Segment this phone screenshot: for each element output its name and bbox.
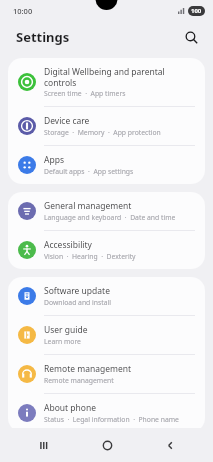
button[interactable]: General management <box>8 192 205 230</box>
button[interactable]: Software update <box>8 277 205 315</box>
button[interactable]: Search <box>179 25 203 49</box>
button[interactable]: User guide <box>8 316 205 354</box>
staticText: Remote management <box>44 363 132 375</box>
staticText: Accessibility <box>44 239 92 251</box>
button[interactable]: About phone <box>8 394 205 432</box>
button[interactable]: Apps <box>8 146 205 184</box>
staticText: Screen time · App timers <box>44 89 126 98</box>
staticText: About phone <box>44 402 97 414</box>
staticText: Digital Wellbeing and parental controls <box>44 66 165 88</box>
button[interactable]: Remote management <box>8 355 205 393</box>
staticText: Default apps · App settings <box>44 167 134 176</box>
staticText: Storage · Memory · App protection <box>44 128 161 137</box>
button[interactable]: Device care <box>8 107 205 145</box>
button[interactable]: Accessibility <box>8 231 205 269</box>
staticText: Software update <box>44 285 110 297</box>
staticText: Vision · Hearing · Dexterity <box>44 252 136 261</box>
staticText: 100 <box>191 7 202 15</box>
button[interactable]: Digital Wellbeing and parental controls <box>8 58 205 106</box>
staticText: Device care <box>44 115 90 127</box>
button[interactable]: Home <box>87 428 127 462</box>
staticText: Apps <box>44 154 64 166</box>
staticText: Settings <box>16 28 70 46</box>
staticText: Remote management <box>44 376 114 385</box>
staticText: Learn more <box>44 337 81 346</box>
staticText: Status · Legal information · Phone name <box>44 415 179 424</box>
staticText: General management <box>44 200 132 212</box>
button[interactable]: Back <box>150 428 190 462</box>
staticText: Download and install <box>44 298 112 307</box>
staticText: Language and keyboard · Date and time <box>44 213 176 222</box>
staticText: 10:00 <box>13 6 33 16</box>
button[interactable]: Recents <box>23 428 63 462</box>
staticText: User guide <box>44 324 88 336</box>
